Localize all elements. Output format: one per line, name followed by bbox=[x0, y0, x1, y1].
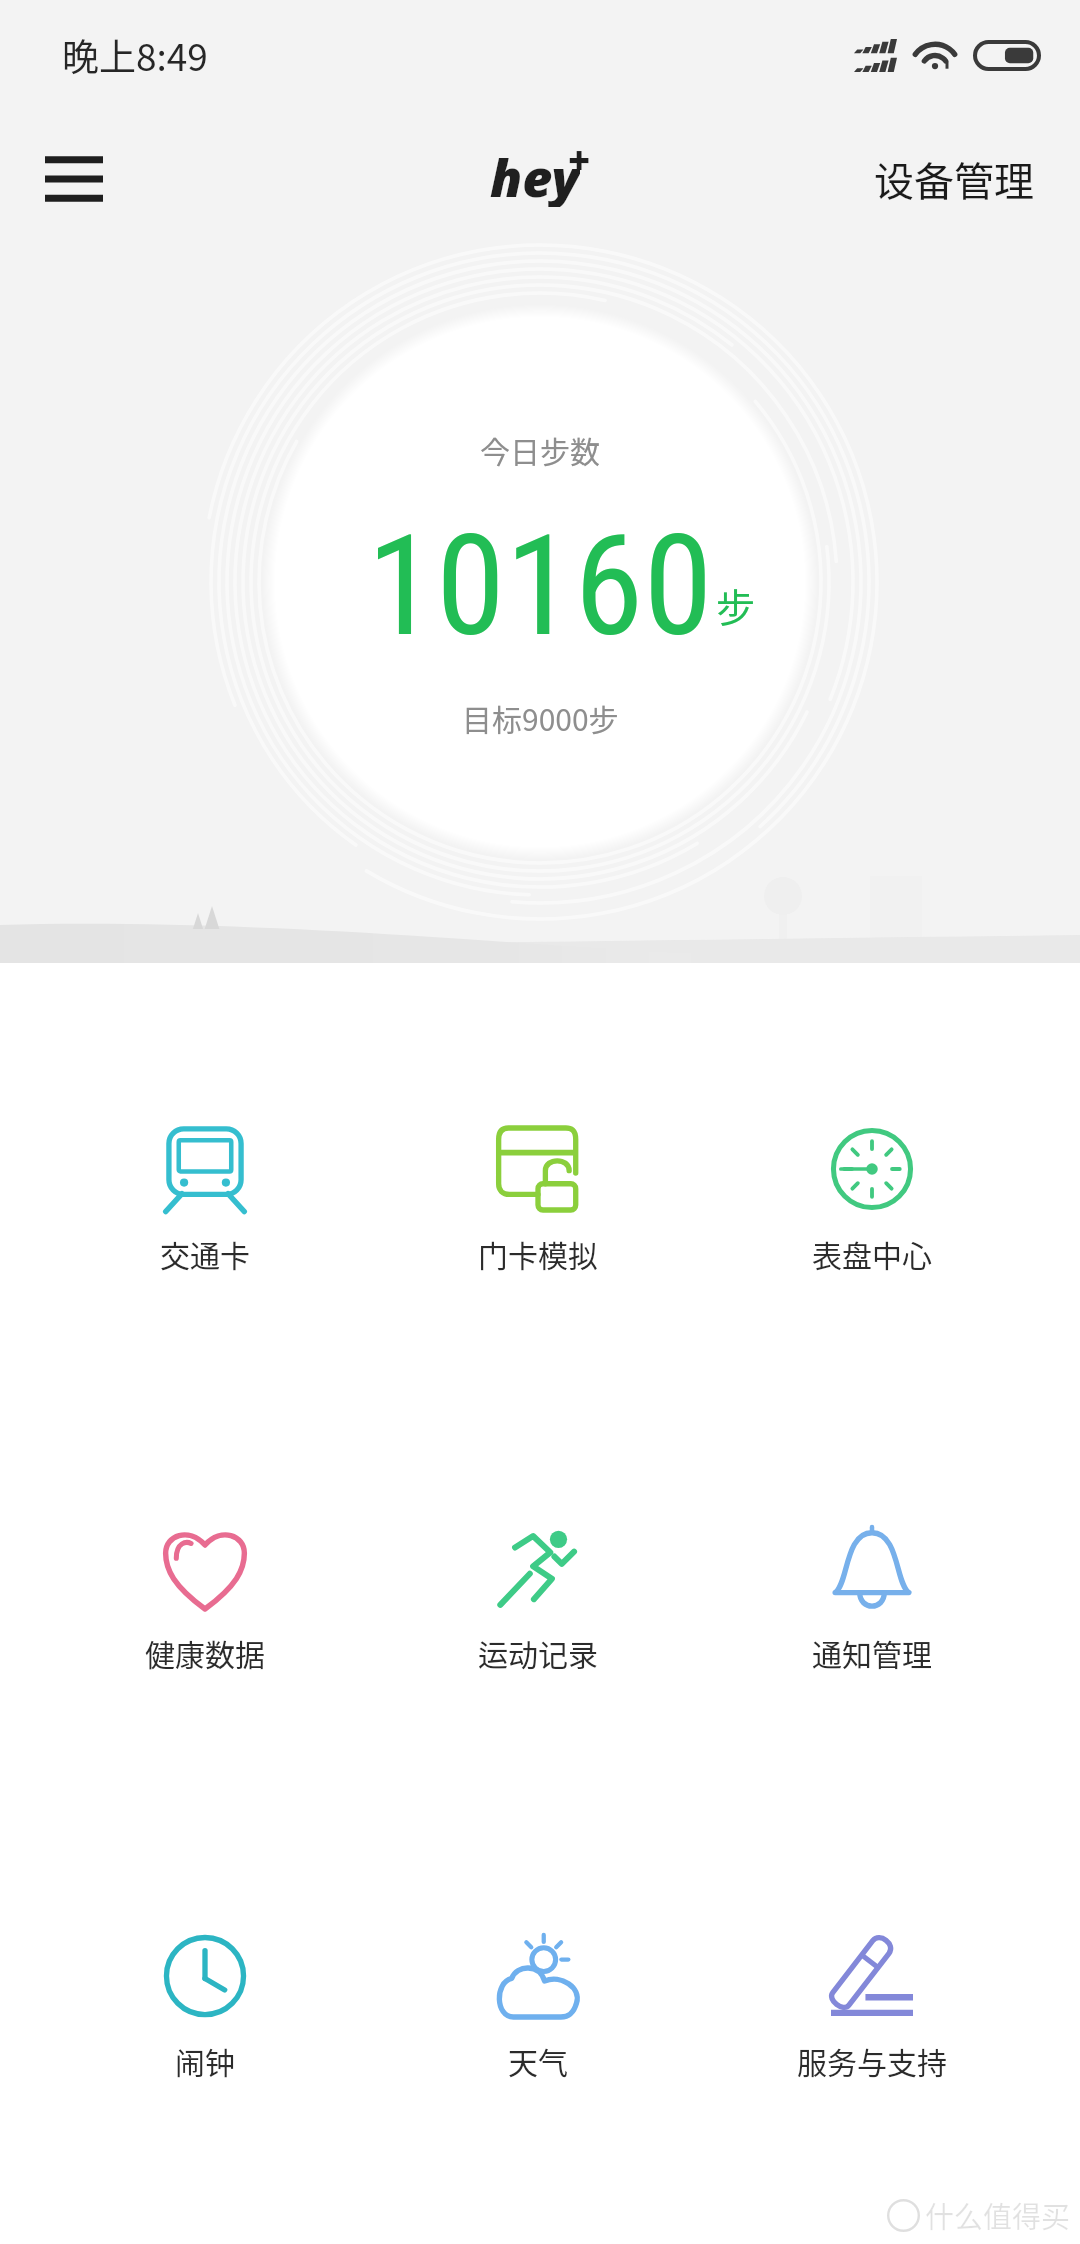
staticText: 设备管理 bbox=[874, 150, 1034, 208]
staticText: 健康数据 bbox=[145, 1631, 265, 1674]
button[interactable]: 闹钟 bbox=[45, 1923, 365, 2103]
staticText: 10160 bbox=[367, 504, 713, 668]
staticText: hey bbox=[490, 141, 580, 207]
staticText: 步 bbox=[716, 577, 756, 633]
button[interactable]: 天气 bbox=[378, 1923, 698, 2103]
staticText: 表盘中心 bbox=[812, 1232, 932, 1275]
staticText: 什么值得买 bbox=[925, 2194, 1071, 2236]
button[interactable]: 健康数据 bbox=[45, 1515, 365, 1695]
staticText: 运动记录 bbox=[478, 1631, 598, 1674]
button[interactable]: 运动记录 bbox=[378, 1515, 698, 1695]
button[interactable]: 通知管理 bbox=[712, 1515, 1032, 1695]
button[interactable]: 门卡模拟 bbox=[378, 1116, 698, 1296]
button[interactable]: 表盘中心 bbox=[712, 1116, 1032, 1296]
staticText: 目标9000步 bbox=[462, 696, 619, 739]
staticText: 天气 bbox=[508, 2039, 568, 2082]
button[interactable]: Menu bbox=[16, 124, 132, 234]
staticText: 服务与支持 bbox=[797, 2039, 947, 2082]
staticText: 通知管理 bbox=[812, 1631, 932, 1674]
staticText: 晚上8:49 bbox=[62, 28, 208, 82]
button[interactable]: 交通卡 bbox=[45, 1116, 365, 1296]
staticText: 交通卡 bbox=[160, 1232, 250, 1275]
staticText: + bbox=[568, 133, 591, 185]
staticText: 闹钟 bbox=[175, 2039, 235, 2082]
button[interactable]: 服务与支持 bbox=[712, 1923, 1032, 2103]
button[interactable]: 设备管理 bbox=[874, 150, 1034, 208]
staticText: 今日步数 bbox=[480, 428, 600, 471]
staticText: 门卡模拟 bbox=[478, 1232, 598, 1275]
